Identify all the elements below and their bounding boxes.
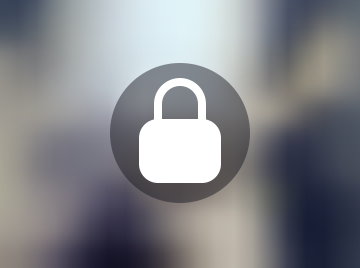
button[interactable]: Unlock — [0, 0, 360, 268]
